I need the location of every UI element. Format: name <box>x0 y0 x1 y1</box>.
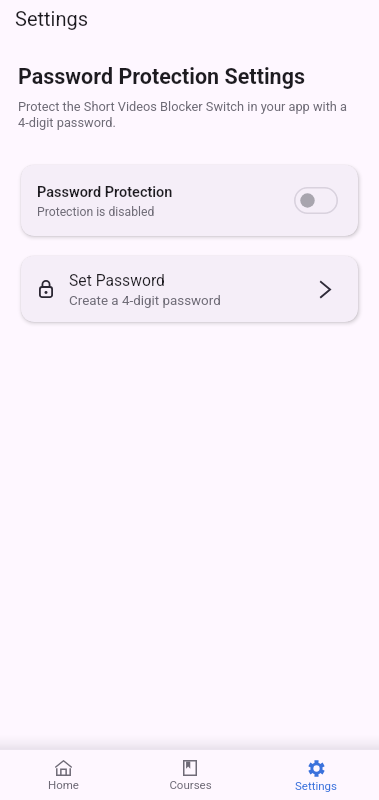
staticText: Password Protection Settings <box>18 64 305 89</box>
button[interactable]: Password Protection <box>21 165 358 236</box>
other: Open <box>320 281 331 298</box>
staticText: Protect the Short Videos Blocker Switch … <box>18 99 359 131</box>
button[interactable]: Courses <box>127 750 253 800</box>
staticText: Protection is disabled <box>37 205 155 219</box>
button[interactable]: Home <box>0 750 127 800</box>
staticText: Password Protection <box>37 184 173 201</box>
button[interactable]: Toggle password protection <box>294 187 338 214</box>
button[interactable]: Set Password <box>21 256 358 322</box>
staticText: Home <box>48 778 79 791</box>
staticText: Courses <box>169 778 212 791</box>
staticText: Create a 4-digit password <box>69 293 221 309</box>
button[interactable]: Settings <box>253 750 379 800</box>
staticText: Settings <box>295 779 337 792</box>
staticText: Settings <box>15 7 89 30</box>
staticText: Set Password <box>69 271 165 289</box>
